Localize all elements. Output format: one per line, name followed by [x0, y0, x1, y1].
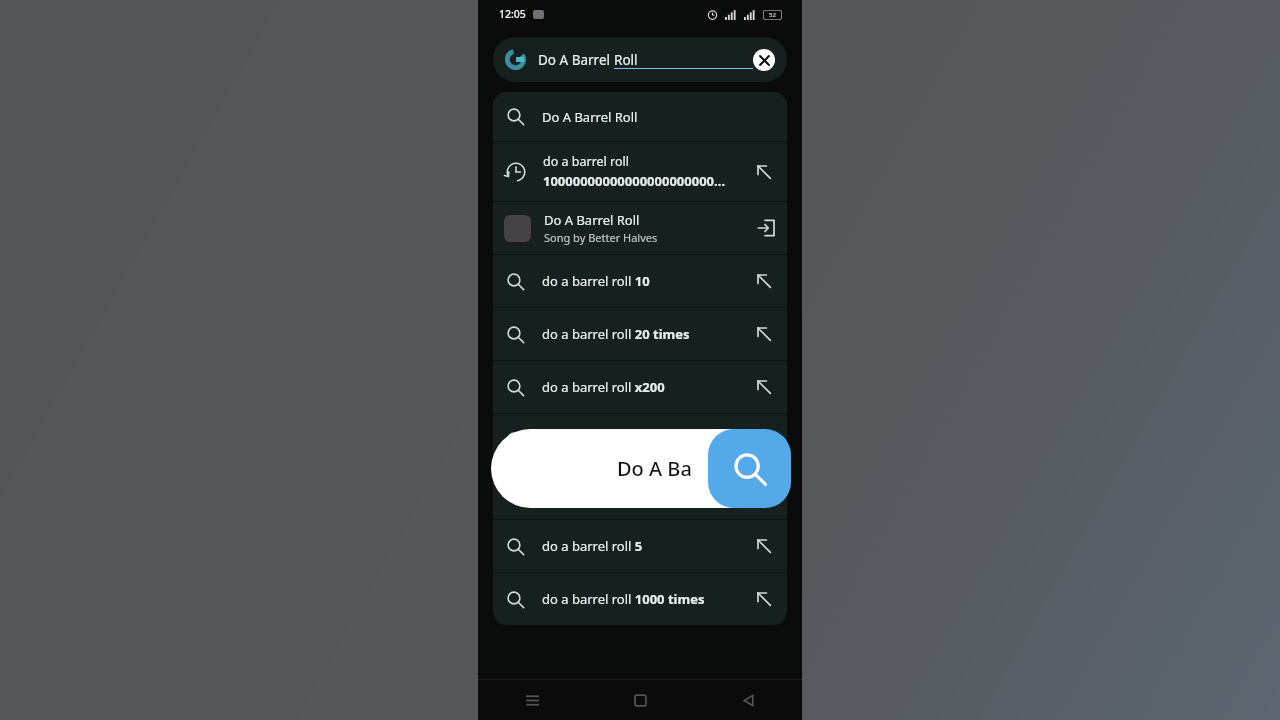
staticText: Do A Barrel Roll: [542, 108, 774, 126]
staticText: Do A Ba: [617, 455, 692, 482]
button[interactable]: Do A Barrel Roll: [493, 92, 787, 141]
staticText: do a barrel roll twice: [542, 431, 754, 449]
button[interactable]: Home: [586, 680, 694, 720]
staticText: do a barrel roll 1000 times: [542, 590, 754, 608]
button[interactable]: Do A Barrel Roll: [493, 202, 787, 254]
staticText: do a barrel roll 5: [542, 537, 754, 555]
staticText: 10000000000000000000000…: [543, 172, 726, 190]
button[interactable]: Insert suggestion: [754, 324, 774, 344]
staticText: do a barrel roll 10: [542, 272, 754, 290]
button[interactable]: do a barrel roll twice: [493, 414, 787, 466]
staticText: Roll: [614, 51, 638, 69]
button[interactable]: Open song: [756, 218, 776, 238]
staticText: Song by Better Halves: [544, 230, 658, 245]
button[interactable]: [491, 429, 791, 508]
button[interactable]: do a barrel roll: [493, 467, 787, 519]
staticText: do a barrel roll: [542, 484, 754, 502]
staticText: 12:05: [499, 7, 526, 21]
button[interactable]: Back: [694, 680, 802, 720]
button[interactable]: Insert suggestion: [754, 483, 774, 503]
staticText: 52: [769, 11, 776, 19]
button[interactable]: Clear: [753, 49, 775, 71]
button[interactable]: Insert suggestion: [754, 271, 774, 291]
button[interactable]: do a barrel roll 20 times: [493, 308, 787, 360]
button[interactable]: do a barrel roll 5: [493, 520, 787, 572]
staticText: do a barrel roll x200: [542, 378, 754, 396]
button[interactable]: Search: [708, 429, 791, 508]
button[interactable]: Insert suggestion: [754, 162, 774, 182]
button[interactable]: do a barrel roll x200: [493, 361, 787, 413]
staticText: Do A Barrel Roll: [544, 211, 640, 229]
button[interactable]: Insert suggestion: [754, 430, 774, 450]
button[interactable]: Do A Barrel: [493, 37, 787, 82]
staticText: Do A Barrel: [538, 51, 614, 69]
button[interactable]: do a barrel roll 10: [493, 255, 787, 307]
button[interactable]: Insert suggestion: [754, 589, 774, 609]
staticText: do a barrel roll 20 times: [542, 325, 754, 343]
button[interactable]: do a barrel roll: [493, 142, 787, 201]
button[interactable]: Menu: [478, 680, 586, 720]
button[interactable]: Insert suggestion: [754, 377, 774, 397]
button[interactable]: do a barrel roll 1000 times: [493, 573, 787, 625]
staticText: do a barrel roll: [543, 153, 629, 170]
button[interactable]: Insert suggestion: [754, 536, 774, 556]
